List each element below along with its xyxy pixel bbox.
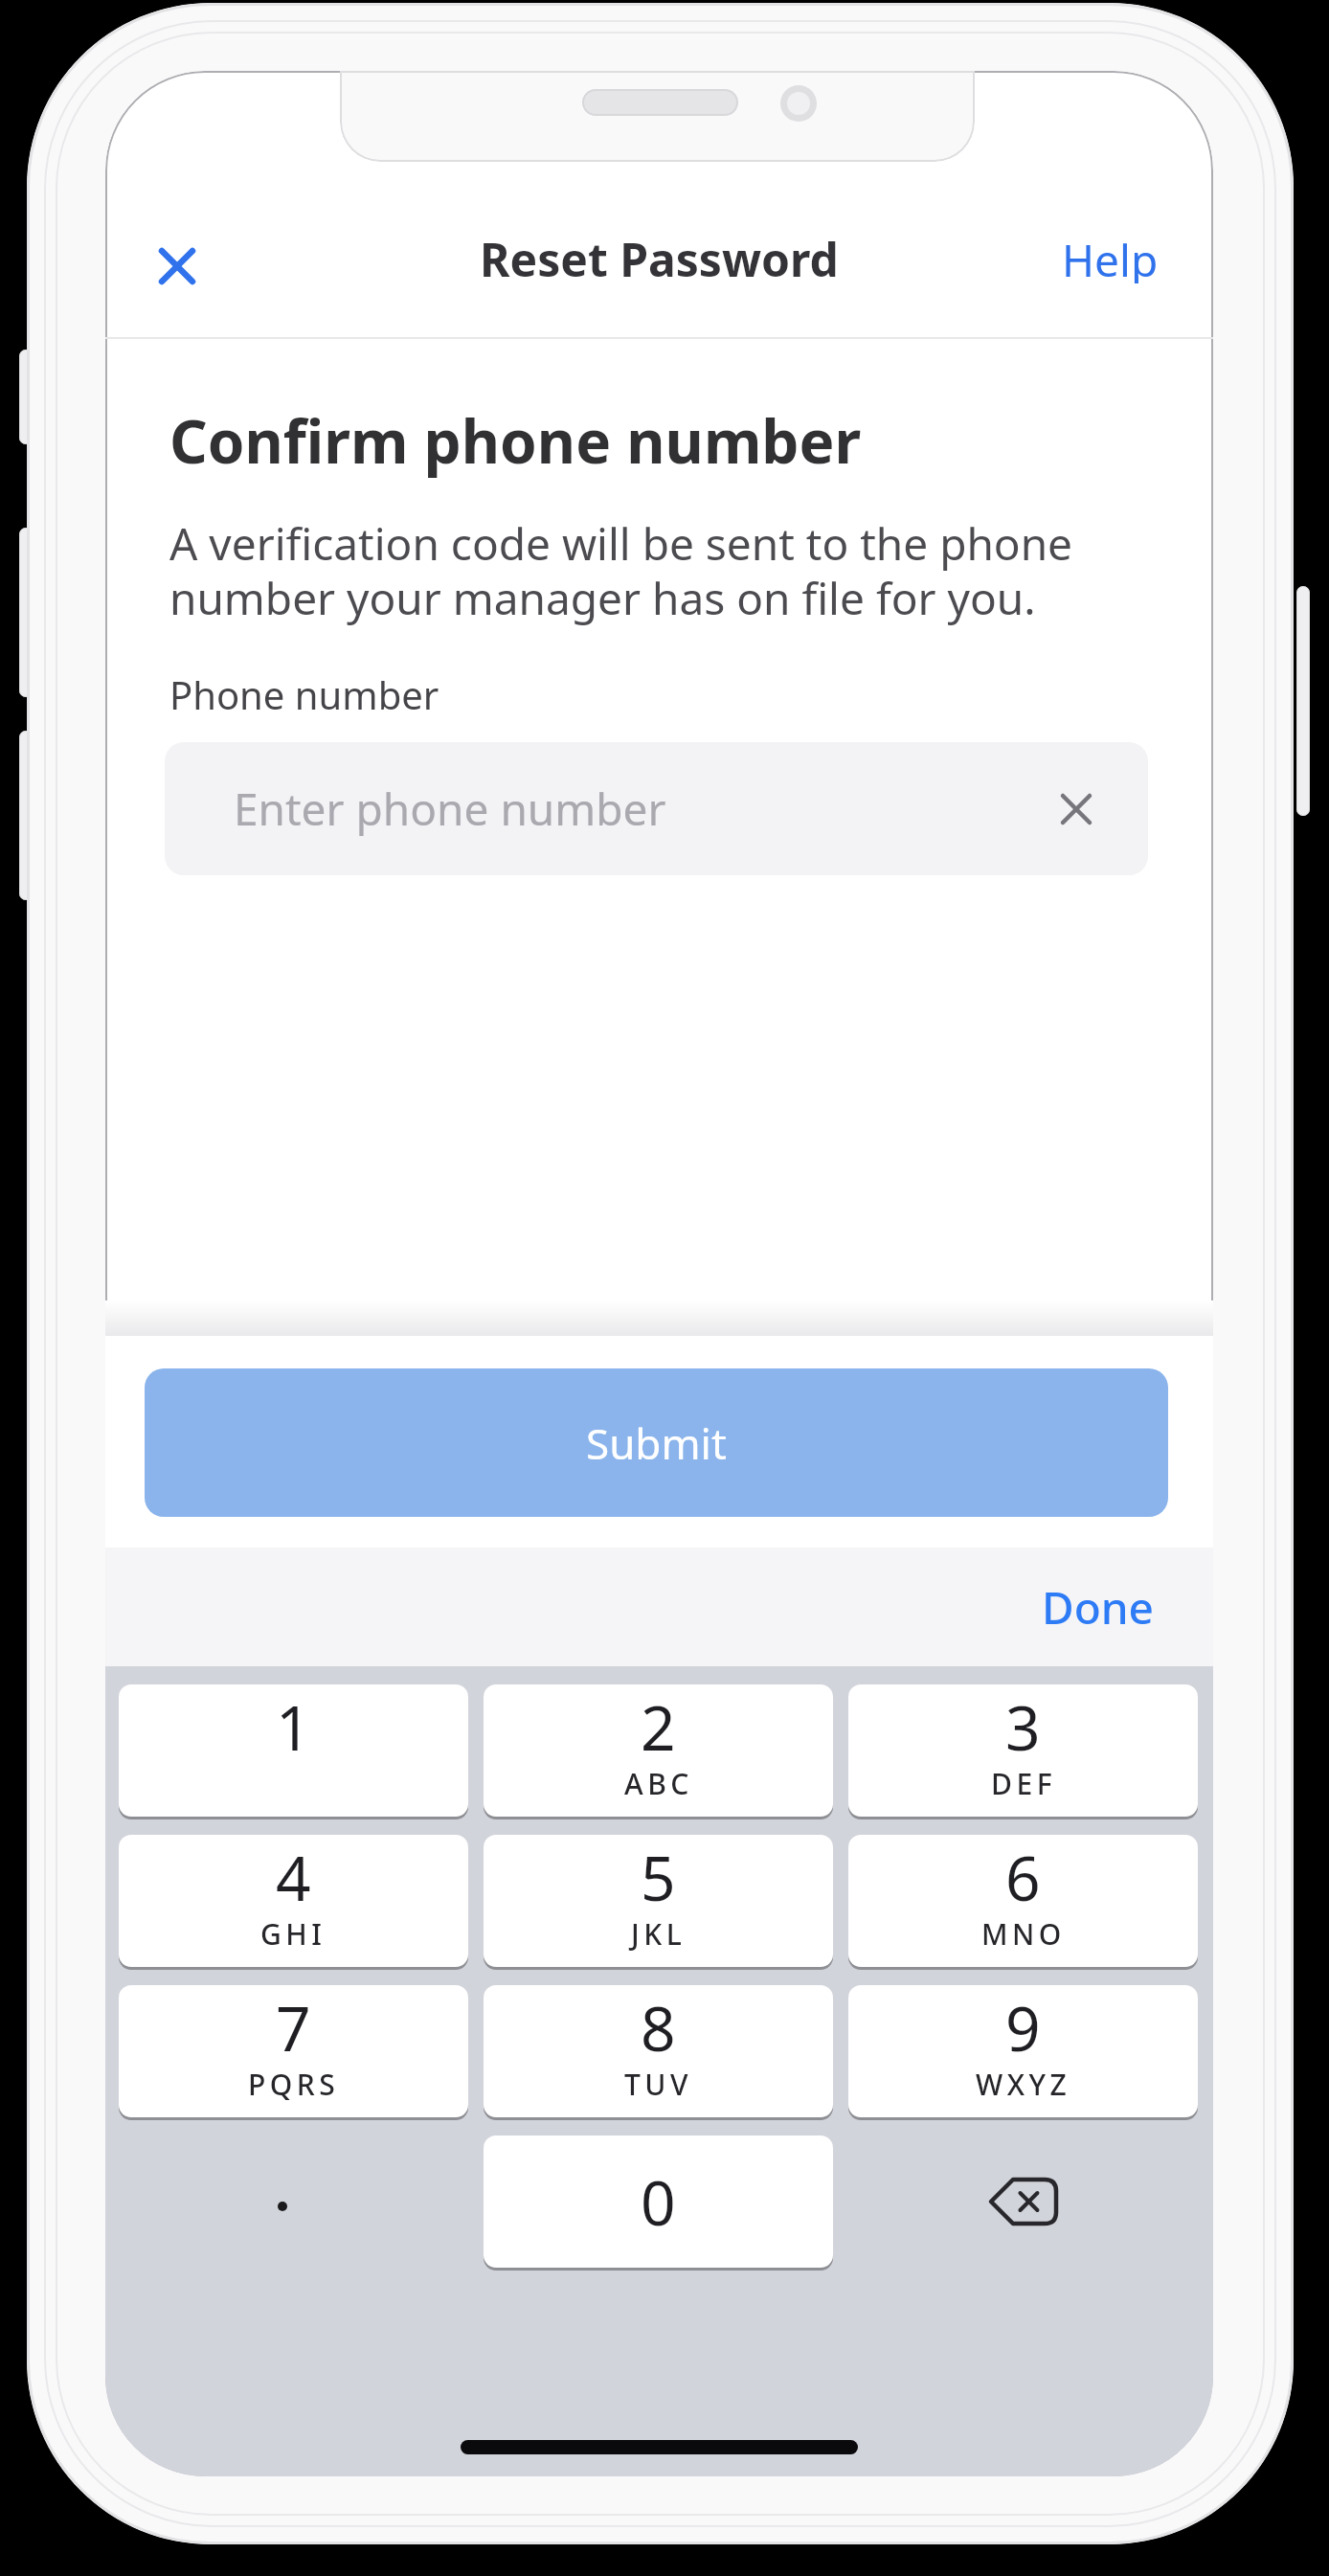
staticText: 0 <box>641 2160 676 2244</box>
staticText: 7 <box>276 1986 311 2069</box>
button[interactable]: 2 <box>484 1684 833 1817</box>
button[interactable]: Enter phone number <box>165 742 1148 875</box>
staticText: Help <box>1062 230 1159 283</box>
button[interactable]: 9 <box>848 1985 1198 2117</box>
button[interactable]: Submit <box>145 1368 1168 1517</box>
staticText: 6 <box>1005 1836 1041 1919</box>
staticText: Enter phone number <box>234 779 666 839</box>
staticText: ABC <box>624 1764 693 1803</box>
button[interactable]: 7 <box>119 1985 468 2117</box>
staticText: TUV <box>624 2065 692 2104</box>
staticText: 2 <box>641 1685 676 1769</box>
button[interactable]: 5 <box>484 1835 833 1967</box>
button[interactable] <box>848 2135 1198 2268</box>
button[interactable]: 1 <box>119 1684 468 1817</box>
staticText: 9 <box>1005 1986 1041 2069</box>
staticText: 8 <box>641 1986 676 2069</box>
staticText: JKL <box>631 1914 687 1954</box>
staticText: Confirm phone number <box>169 400 862 481</box>
button[interactable]: 6 <box>848 1835 1198 1967</box>
staticText: 1 <box>276 1685 311 1769</box>
staticText: Done <box>1042 1577 1154 1638</box>
staticText: MNO <box>981 1914 1066 1954</box>
button[interactable] <box>1046 779 1107 840</box>
staticText: GHI <box>260 1914 327 1954</box>
staticText: A verification code will be sent to the … <box>169 513 1073 627</box>
button[interactable]: 3 <box>848 1684 1198 1817</box>
staticText: 4 <box>276 1836 311 1919</box>
staticText: Phone number <box>169 668 439 720</box>
staticText: PQRS <box>248 2065 340 2104</box>
button[interactable]: 8 <box>484 1985 833 2117</box>
staticText: Submit <box>586 1414 727 1472</box>
staticText: WXYZ <box>976 2065 1071 2104</box>
staticText: Reset Password <box>480 228 839 285</box>
staticText: 3 <box>1005 1685 1041 1769</box>
button[interactable] <box>141 230 214 303</box>
button[interactable]: 4 <box>119 1835 468 1967</box>
button[interactable]: Help <box>1005 230 1159 283</box>
button[interactable] <box>119 2135 468 2268</box>
staticText: DEF <box>991 1764 1056 1803</box>
button[interactable]: 0 <box>484 2135 833 2268</box>
staticText: 5 <box>641 1836 676 1919</box>
button[interactable]: Done <box>1022 1548 1213 1666</box>
